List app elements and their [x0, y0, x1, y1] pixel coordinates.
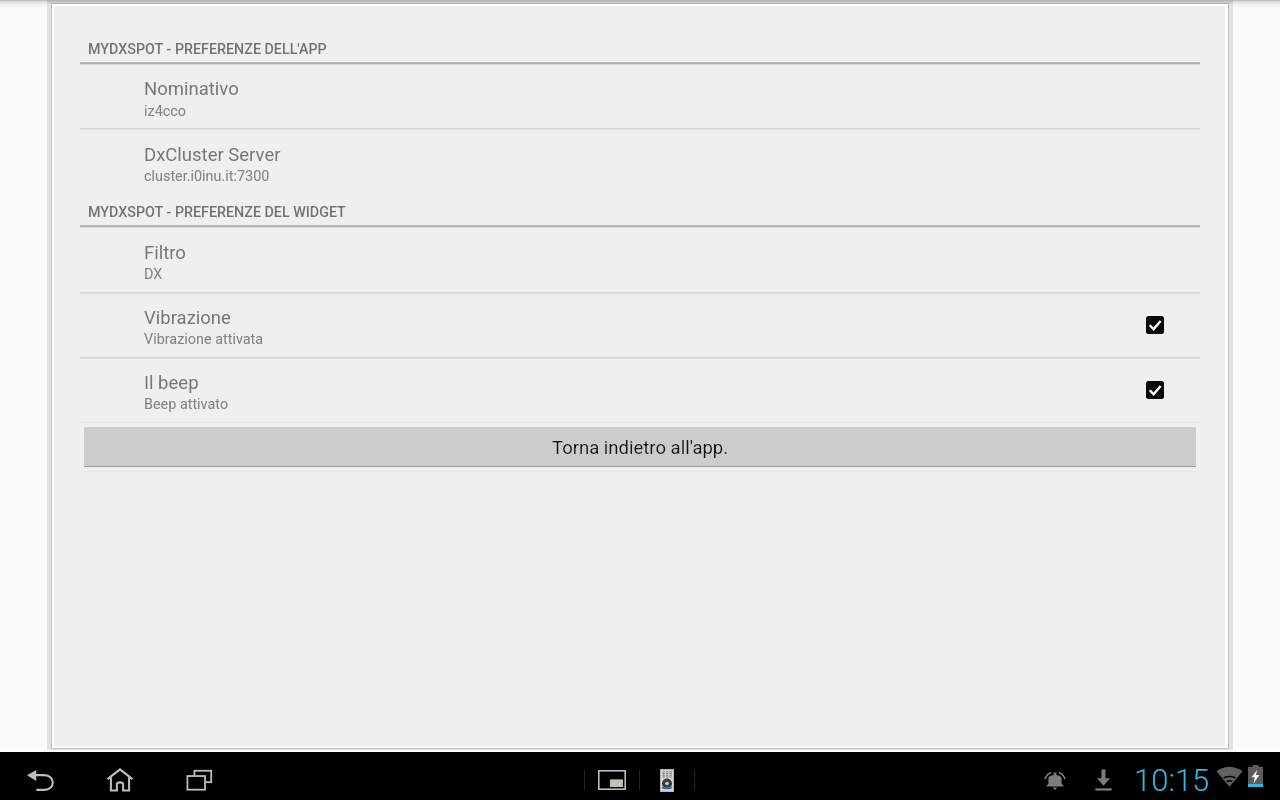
button[interactable]: Back [17, 764, 65, 796]
button[interactable] [80, 294, 1200, 357]
staticText: DxCluster Server [144, 144, 281, 166]
button[interactable]: Battery charging [1248, 765, 1263, 787]
staticText: Nominativo [144, 78, 239, 100]
button[interactable]: Torna indietro all'app. [84, 427, 1196, 467]
staticText: Vibrazione [144, 307, 231, 329]
button[interactable] [80, 65, 1200, 128]
staticText: MYDXSPOT - PREFERENZE DEL WIDGET [88, 204, 346, 221]
button[interactable]: Notifications [1036, 764, 1074, 796]
button[interactable]: Screenshot [594, 764, 630, 796]
button[interactable]: Recent apps [176, 764, 224, 796]
staticText: Vibrazione attivata [144, 331, 264, 348]
button[interactable]: Toggle setting [1146, 381, 1164, 399]
staticText: iz4cco [144, 103, 186, 120]
staticText: Beep attivato [144, 396, 229, 413]
staticText: MYDXSPOT - PREFERENZE DELL'APP [88, 41, 327, 58]
button[interactable]: Downloads [1086, 764, 1120, 796]
button[interactable]: Remote control [650, 764, 684, 796]
button[interactable] [80, 359, 1200, 422]
staticText: cluster.i0inu.it:7300 [144, 168, 270, 185]
button[interactable]: Home [96, 764, 144, 796]
button[interactable]: Wi-Fi [1216, 765, 1243, 787]
staticText: Torna indietro all'app. [552, 437, 729, 459]
staticText: Filtro [144, 242, 186, 264]
staticText: 10:15 [1134, 762, 1210, 798]
button[interactable]: Toggle setting [1146, 316, 1164, 334]
button[interactable] [80, 130, 1200, 192]
staticText: DX [144, 266, 163, 283]
button[interactable] [80, 228, 1200, 292]
staticText: Il beep [144, 372, 199, 394]
